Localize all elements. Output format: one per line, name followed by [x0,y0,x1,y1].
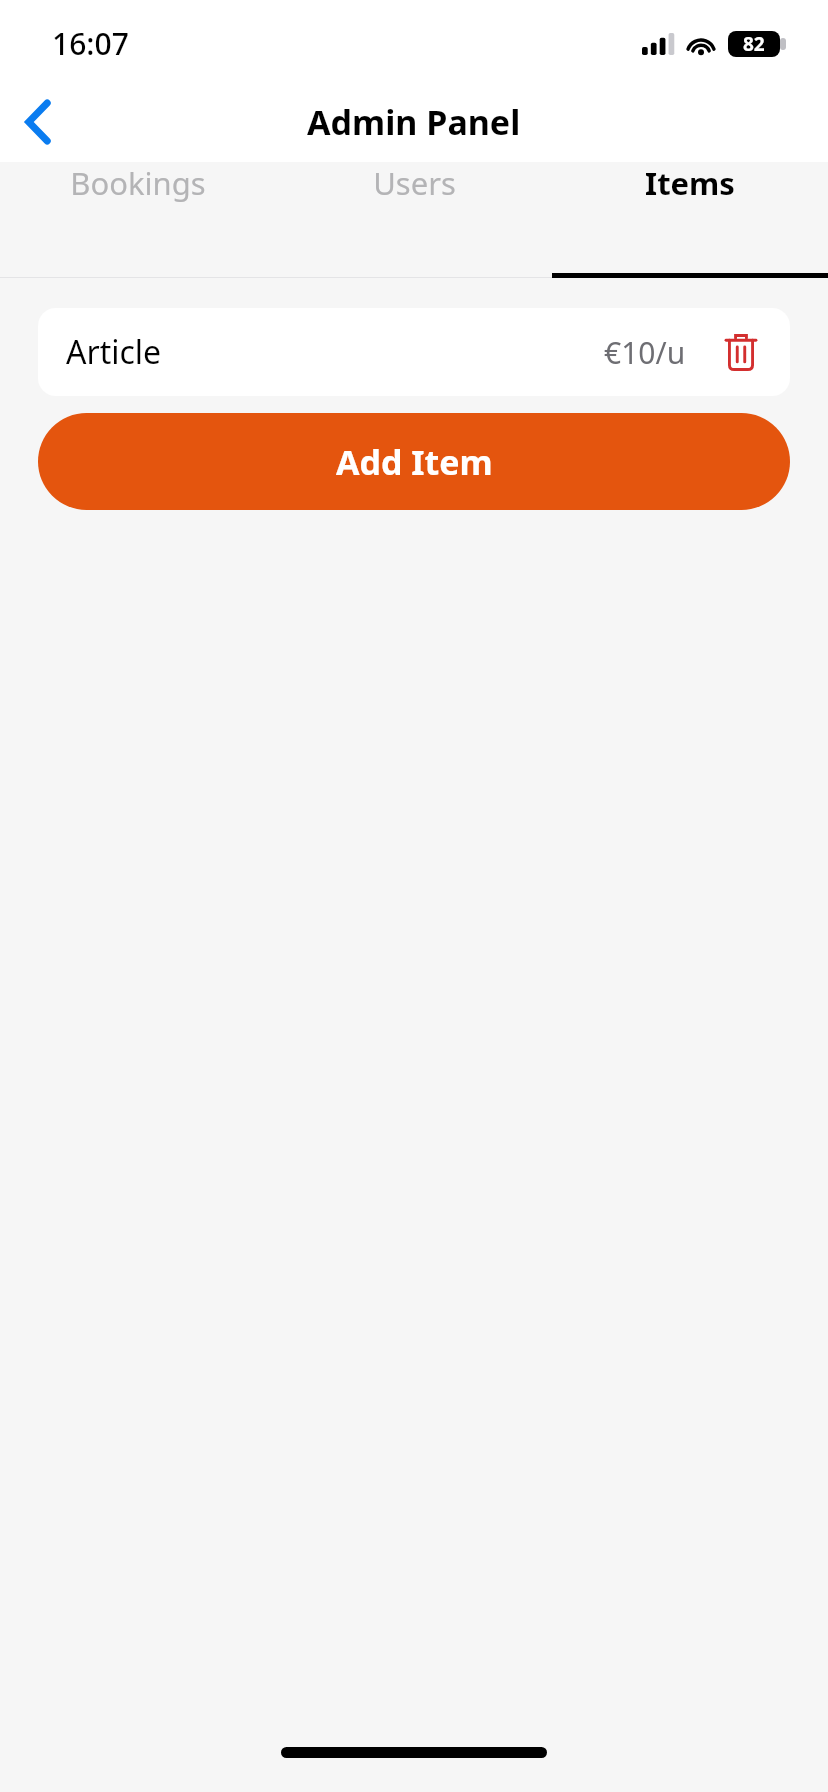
button[interactable]: Items [552,162,828,204]
button[interactable]: Delete item [714,325,768,379]
button[interactable]: Add Item [38,413,790,510]
staticText: Article [66,330,604,374]
staticText: 16:07 [52,23,129,64]
staticText: Add Item [336,439,493,485]
staticText: €10/u [604,332,686,373]
staticText: 82 [743,31,765,57]
staticText: Bookings [70,162,206,204]
button[interactable]: Bookings [0,162,276,204]
staticText: Users [373,162,456,204]
button[interactable]: Back [0,84,76,160]
button[interactable]: Users [276,162,552,204]
staticText: Admin Panel [307,99,521,145]
button[interactable]: Article [38,308,790,396]
staticText: Items [645,162,735,204]
